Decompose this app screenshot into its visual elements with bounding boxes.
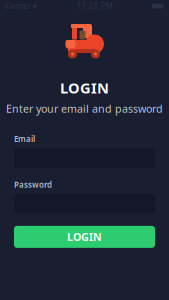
staticText: 11:28 PM [76, 1, 112, 11]
staticText: Password [14, 179, 52, 190]
staticText: ▾ [33, 1, 37, 11]
staticText: LOGIN [67, 230, 102, 244]
staticText: Carrier [5, 1, 31, 11]
button[interactable]: LOGIN [14, 226, 155, 248]
staticText: Enter your email and password [6, 101, 163, 116]
staticText: Email [14, 134, 35, 144]
staticText: LOGIN [60, 78, 109, 97]
